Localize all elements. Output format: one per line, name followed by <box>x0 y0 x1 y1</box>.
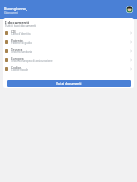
staticText: Giovanni <box>4 10 19 15</box>
staticText: Patente <box>11 39 23 43</box>
button[interactable]: Europea <box>3 55 134 64</box>
staticText: Codice <box>11 66 22 70</box>
staticText: Vai ai documenti <box>56 82 82 86</box>
button[interactable]: Patente <box>3 37 134 46</box>
staticText: CIE <box>11 30 16 34</box>
staticText: Tessera <box>11 48 23 52</box>
staticText: Buongiorno, <box>4 6 27 11</box>
button[interactable]: CIE <box>3 28 134 37</box>
staticText: Tessera europea di assicurazione <box>11 59 53 63</box>
button[interactable]: Codice <box>3 64 134 73</box>
button[interactable]: Tessera <box>3 46 134 55</box>
staticText: Tessera sanitaria <box>11 50 33 54</box>
staticText: I documenti <box>5 20 30 25</box>
button[interactable]: Account profile <box>126 6 133 13</box>
staticText: Patente di guida <box>11 41 32 45</box>
staticText: Tutti i tuoi documenti <box>5 24 37 28</box>
staticText: Europea <box>11 57 24 61</box>
staticText: Carta d'identita <box>11 32 31 36</box>
button[interactable]: Vai ai documenti <box>7 80 131 87</box>
staticText: Codice fiscale <box>11 68 29 72</box>
